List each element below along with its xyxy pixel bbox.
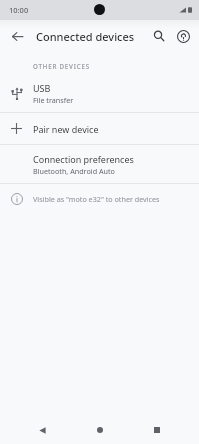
staticText: Connection preferences bbox=[33, 153, 134, 165]
staticText: Pair new device bbox=[33, 123, 99, 135]
button[interactable]: Pair new device bbox=[0, 113, 199, 144]
staticText: 10:00 bbox=[9, 5, 29, 15]
button[interactable]: USB bbox=[0, 74, 199, 112]
staticText: Connected devices bbox=[36, 29, 135, 44]
button[interactable]: Connection preferences bbox=[0, 145, 199, 183]
staticText: File transfer bbox=[33, 95, 74, 105]
staticText: Visible as "moto e32" to other devices bbox=[33, 194, 160, 204]
staticText: Bluetooth, Android Auto bbox=[33, 166, 115, 176]
button[interactable]: Search bbox=[147, 24, 171, 48]
button[interactable]: Back bbox=[6, 25, 28, 47]
staticText: USB bbox=[33, 82, 51, 94]
button[interactable]: Back bbox=[27, 416, 57, 444]
button[interactable]: Help bbox=[171, 24, 195, 48]
staticText: OTHER DEVICES bbox=[33, 62, 90, 70]
button[interactable]: Home bbox=[85, 416, 115, 444]
button[interactable]: Recent apps bbox=[142, 416, 172, 444]
